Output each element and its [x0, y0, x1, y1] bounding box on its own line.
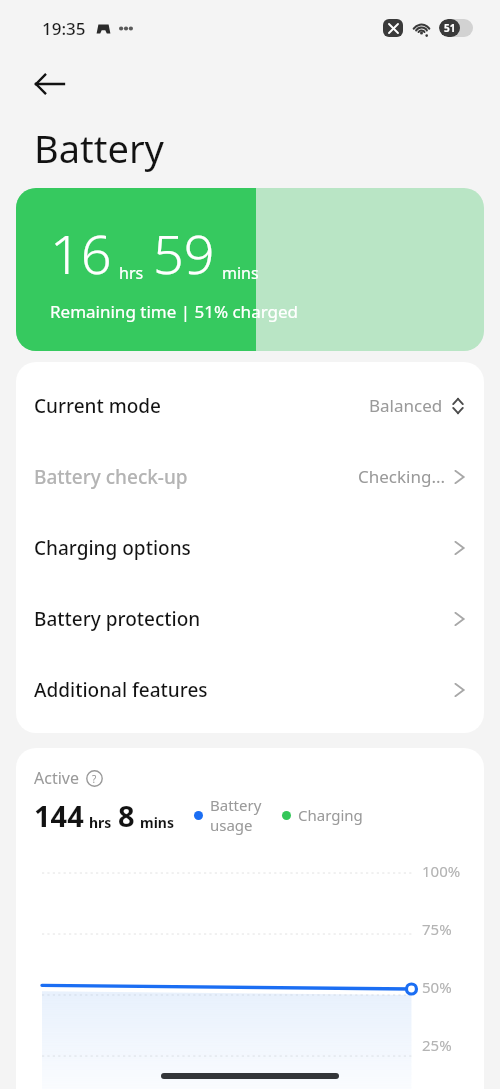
- button[interactable]: Charging options: [16, 512, 484, 583]
- button[interactable]: Current mode: [16, 370, 484, 441]
- staticText: Balanced: [369, 394, 443, 417]
- staticText: 75%: [422, 919, 452, 939]
- button[interactable]: 16: [16, 188, 484, 351]
- staticText: 19:35: [42, 17, 86, 40]
- staticText: 25%: [422, 1035, 452, 1055]
- staticText: ?: [92, 772, 97, 786]
- staticText: 51: [444, 21, 456, 35]
- staticText: Checking...: [358, 465, 446, 488]
- staticText: mins: [222, 262, 259, 284]
- button[interactable]: Help about Active time: [86, 770, 103, 787]
- staticText: 59: [153, 216, 215, 290]
- staticText: 50%: [422, 977, 452, 997]
- staticText: Battery: [34, 122, 164, 174]
- button[interactable]: Battery check-up: [16, 441, 484, 512]
- staticText: Charging: [298, 805, 363, 825]
- staticText: hrs: [89, 813, 112, 832]
- staticText: Remaining time | 51% charged: [50, 300, 299, 323]
- staticText: 16: [50, 216, 112, 290]
- staticText: Battery usage: [210, 795, 272, 835]
- staticText: Charging options: [34, 535, 191, 561]
- button[interactable]: Additional features: [16, 654, 484, 725]
- staticText: hrs: [119, 262, 144, 284]
- staticText: Battery protection: [34, 606, 201, 632]
- button[interactable]: Battery protection: [16, 583, 484, 654]
- staticText: 144: [34, 796, 84, 835]
- staticText: 8: [118, 796, 135, 835]
- staticText: 100%: [422, 861, 461, 881]
- staticText: Current mode: [34, 393, 161, 419]
- staticText: Battery check-up: [34, 464, 188, 490]
- button[interactable]: Back: [22, 56, 78, 112]
- staticText: mins: [140, 813, 174, 832]
- staticText: Active: [34, 767, 79, 789]
- staticText: Additional features: [34, 677, 208, 703]
